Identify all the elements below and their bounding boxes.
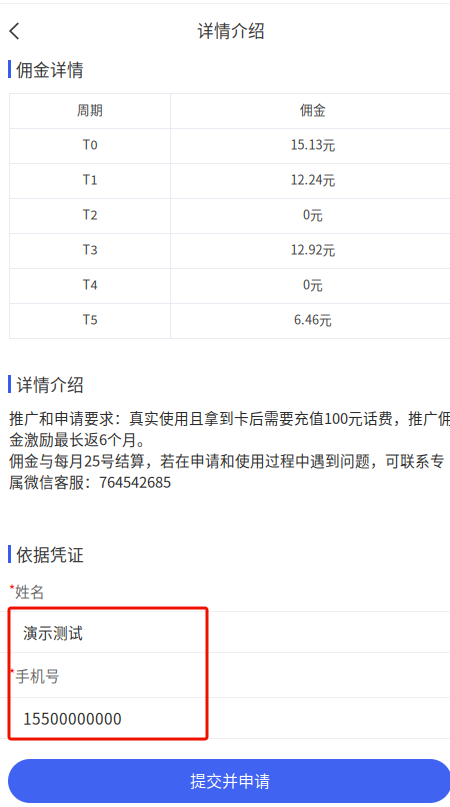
staticText: T0: [82, 135, 97, 153]
button[interactable]: 15500000000: [0, 698, 450, 738]
staticText: 提交并申请: [190, 768, 270, 792]
staticText: 佣金详情: [16, 57, 84, 81]
staticText: T5: [82, 310, 97, 328]
staticText: 佣金与每月25号结算，若在申请和使用过程中遇到问题，可联系专属微信客服：7645…: [9, 449, 445, 492]
staticText: 周期: [77, 100, 103, 118]
staticText: 佣金: [300, 100, 326, 118]
staticText: 依据凭证: [16, 542, 84, 566]
staticText: *: [9, 579, 15, 599]
staticText: 演示测试: [23, 621, 83, 643]
staticText: 15.13元: [290, 135, 335, 153]
staticText: 12.24元: [290, 170, 335, 188]
staticText: 详情介绍: [16, 372, 84, 396]
staticText: T2: [82, 205, 97, 223]
staticText: T1: [82, 170, 97, 188]
staticText: *: [9, 663, 15, 683]
staticText: T3: [82, 240, 97, 258]
staticText: 手机号: [15, 664, 60, 686]
staticText: 详情介绍: [197, 18, 265, 42]
staticText: 6.46元: [294, 310, 332, 328]
button[interactable]: Back: [0, 9, 52, 53]
staticText: T4: [82, 275, 97, 293]
staticText: 推广和申请要求：真实使用且拿到卡后需要充值100元话费，推广佣金激励最长返6个月…: [9, 407, 450, 449]
button[interactable]: 提交并申请: [8, 759, 450, 803]
staticText: 12.92元: [290, 240, 335, 258]
staticText: 0元: [303, 275, 323, 293]
staticText: 0元: [303, 205, 323, 223]
button[interactable]: 演示测试: [0, 612, 450, 652]
staticText: 姓名: [15, 580, 45, 602]
staticText: 15500000000: [23, 707, 122, 729]
